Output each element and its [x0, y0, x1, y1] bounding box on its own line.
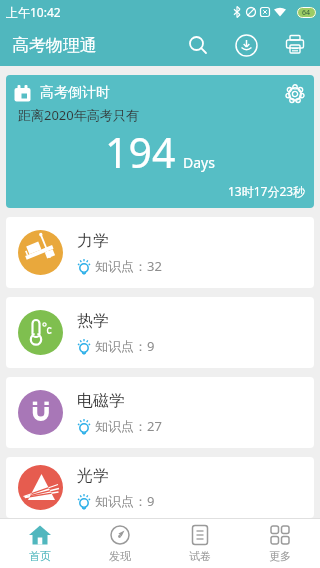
button[interactable]: 高考倒计时 [6, 75, 314, 208]
button[interactable]: 发现 [80, 518, 160, 568]
staticText: 更多 [269, 549, 291, 563]
button[interactable]: 热学 [6, 297, 314, 368]
staticText: 知识点：9 [95, 492, 155, 510]
button[interactable] [270, 24, 320, 66]
staticText: 194 [105, 124, 176, 180]
staticText: 13时17分23秒 [228, 183, 306, 199]
staticText: 64 [302, 8, 311, 18]
staticText: 高考物理通 [12, 35, 97, 56]
staticText: 热学 [77, 311, 109, 331]
staticText: 光学 [77, 466, 109, 486]
staticText: 首页 [29, 549, 51, 563]
staticText: 知识点：9 [95, 337, 155, 355]
button[interactable] [280, 79, 310, 109]
button[interactable]: 力学 [6, 217, 314, 288]
button[interactable]: 更多 [240, 518, 320, 568]
staticText: 高考倒计时 [40, 84, 110, 102]
button[interactable]: 试卷 [160, 518, 240, 568]
staticText: 知识点：27 [95, 417, 162, 435]
button[interactable] [222, 24, 270, 66]
staticText: 上午10:42 [6, 4, 61, 20]
staticText: 发现 [109, 549, 131, 563]
button[interactable]: 光学 [6, 457, 314, 518]
button[interactable]: 首页 [0, 518, 80, 568]
staticText: 距离2020年高考只有 [18, 106, 139, 124]
staticText: 试卷 [189, 549, 211, 563]
button[interactable]: 电磁学 [6, 377, 314, 448]
staticText: 力学 [77, 231, 109, 251]
button[interactable] [174, 24, 222, 66]
staticText: 电磁学 [77, 391, 125, 411]
staticText: 知识点：32 [95, 257, 162, 275]
staticText: Days [183, 153, 215, 172]
